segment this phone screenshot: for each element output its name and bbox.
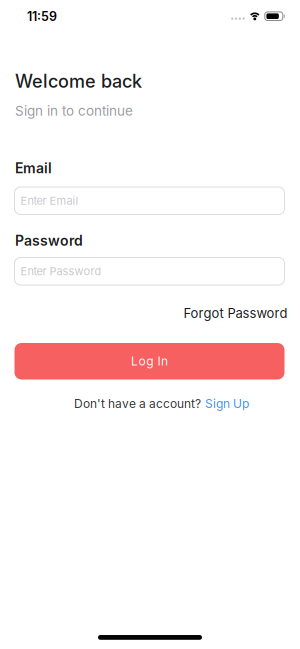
button[interactable]: Sign Up <box>205 396 249 411</box>
staticText: Don't have a account? <box>74 396 201 411</box>
staticText: 11:59 <box>27 9 57 24</box>
staticText: Email <box>15 160 52 176</box>
button[interactable]: Enter Email <box>14 187 284 214</box>
button[interactable]: Forgot Password <box>183 305 287 321</box>
staticText: Sign in to continue <box>15 103 133 119</box>
staticText: Log In <box>131 354 168 368</box>
staticText: Welcome back <box>15 70 142 92</box>
button[interactable]: Log In <box>14 343 284 379</box>
staticText: Forgot Password <box>183 305 287 321</box>
staticText: Enter Password <box>20 265 101 278</box>
staticText: Enter Email <box>20 194 78 207</box>
staticText: Sign Up <box>205 396 249 411</box>
button[interactable]: Enter Password <box>14 257 284 285</box>
staticText: Password <box>15 232 83 249</box>
